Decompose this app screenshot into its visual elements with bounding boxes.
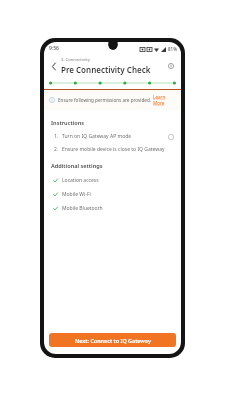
staticText: Learn More bbox=[153, 94, 176, 106]
button[interactable]: 1. bbox=[51, 133, 174, 140]
staticText: Next: Connect to IQ Gateway bbox=[75, 337, 151, 344]
button[interactable]: Learn More bbox=[153, 94, 176, 106]
staticText: Additional settings bbox=[51, 162, 103, 170]
staticText: 2. bbox=[54, 146, 59, 153]
staticText: Ensure mobile device is close to IQ Gate… bbox=[62, 146, 165, 153]
button[interactable]: Back bbox=[48, 60, 60, 72]
staticText: 9:56 bbox=[49, 45, 59, 52]
staticText: Instructions bbox=[51, 119, 85, 127]
button[interactable]: Mobile Bluetooth bbox=[51, 205, 174, 212]
button[interactable]: Next: Connect to IQ Gateway bbox=[49, 333, 176, 347]
button[interactable]: 2. bbox=[51, 146, 174, 153]
button[interactable]: Location access bbox=[51, 177, 174, 184]
button[interactable]: Help bbox=[165, 60, 177, 72]
staticText: 81% bbox=[168, 46, 177, 52]
staticText: Mobile Bluetooth bbox=[62, 205, 103, 212]
staticText: Turn on IQ Gateway AP mode bbox=[62, 133, 132, 140]
staticText: Pre Connectivity Check bbox=[61, 64, 151, 75]
staticText: Location access bbox=[62, 177, 99, 184]
staticText: 3. Connectivity bbox=[61, 57, 90, 63]
staticText: 1. bbox=[54, 133, 59, 140]
staticText: Mobile Wi-Fi bbox=[62, 191, 91, 198]
button[interactable]: Mobile Wi-Fi bbox=[51, 191, 174, 198]
staticText: Ensure following permissions are provide… bbox=[58, 97, 151, 103]
